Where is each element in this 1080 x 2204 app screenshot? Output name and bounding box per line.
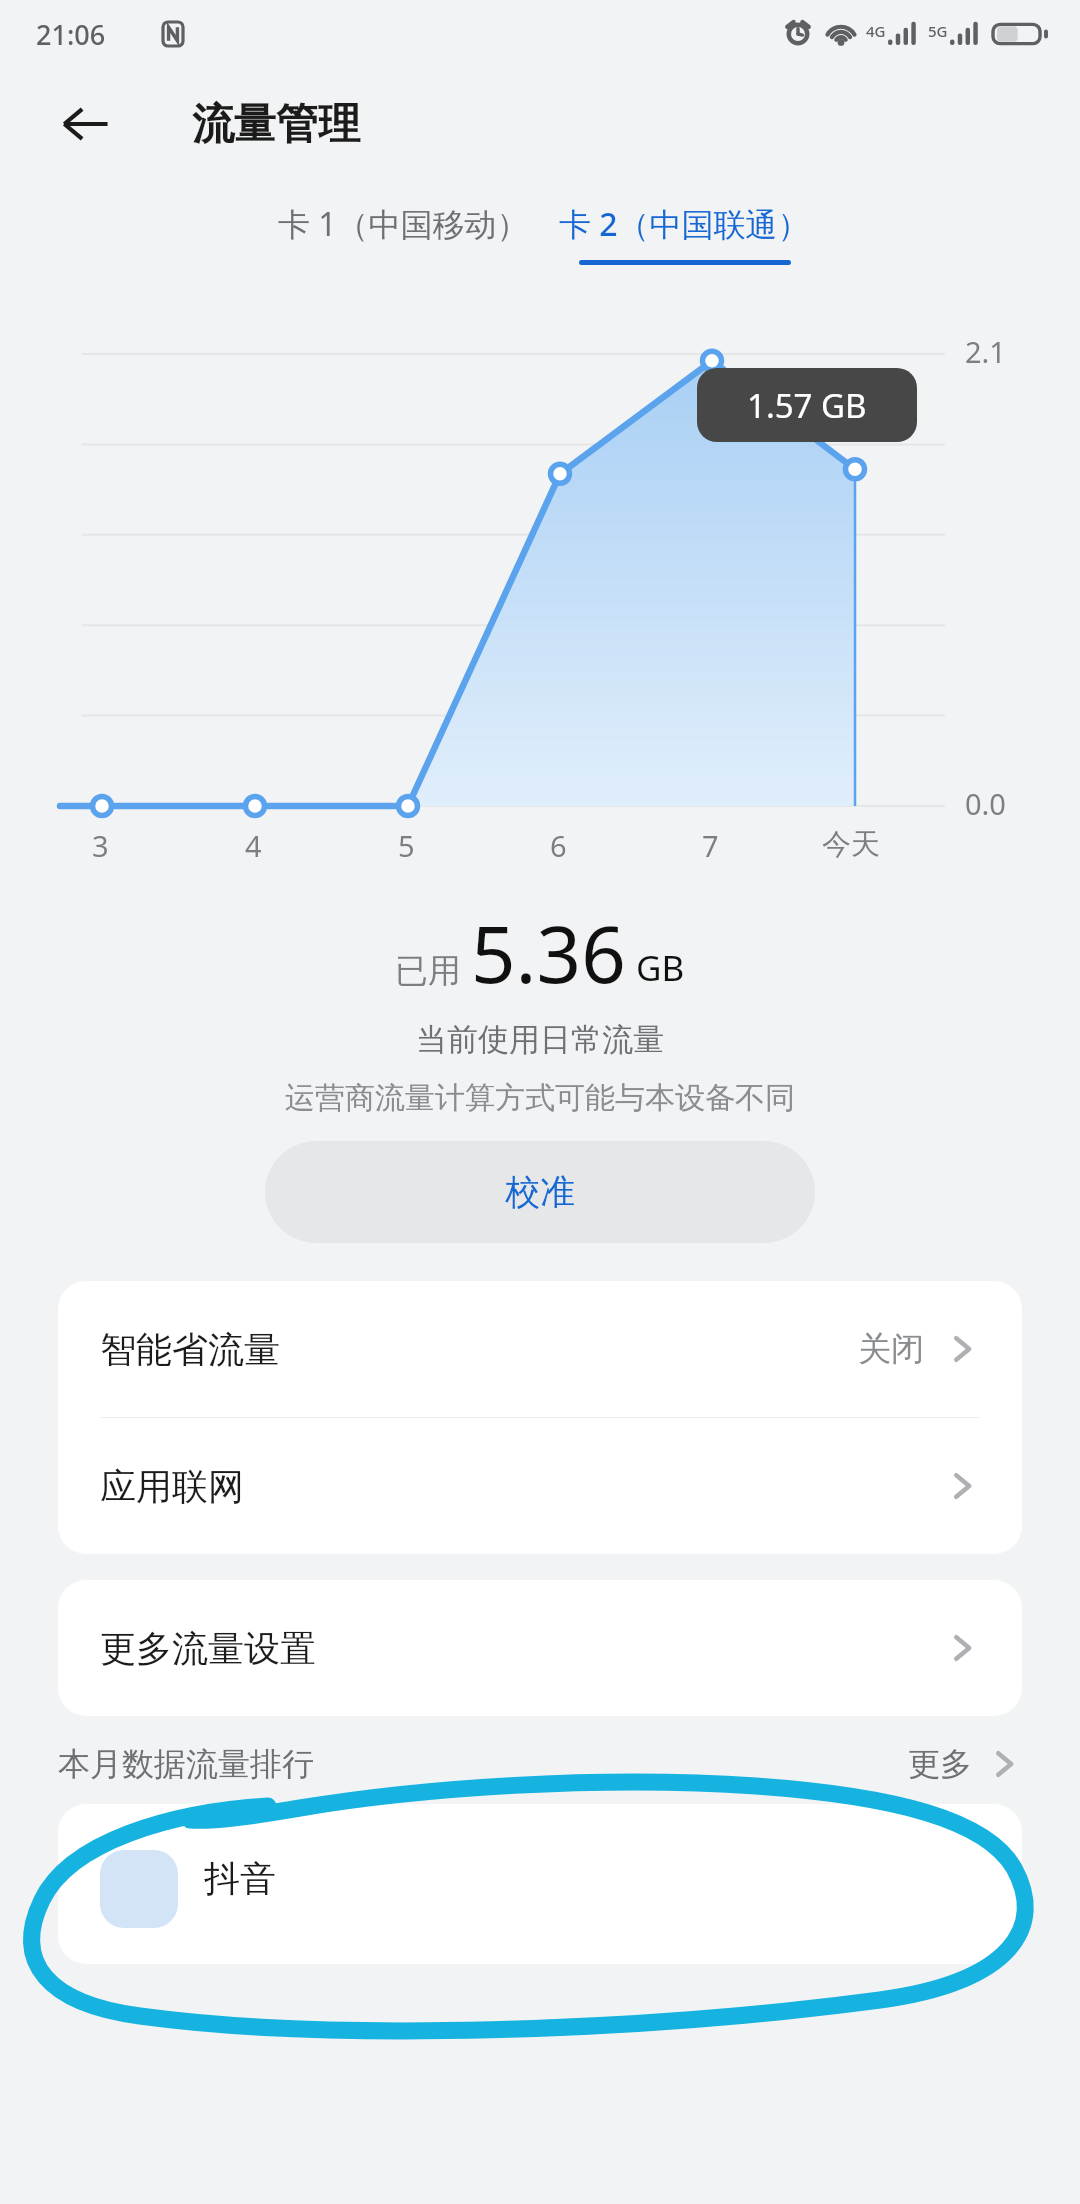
staticText: 流量管理 (192, 98, 360, 151)
button[interactable]: 卡 1（中国移动） (262, 192, 545, 256)
staticText: 7 (702, 826, 719, 865)
staticText: 4G (866, 21, 886, 41)
staticText: 6 (550, 826, 567, 865)
button[interactable]: 应用联网 (58, 1418, 1022, 1554)
staticText: 关闭 (858, 1328, 924, 1370)
button[interactable]: 校准 (265, 1141, 815, 1243)
staticText: 今天 (822, 826, 880, 863)
staticText: 抖音 (204, 1856, 276, 1901)
staticText: 5.36 (471, 900, 626, 1006)
staticText: 已用 (395, 950, 461, 992)
staticText: 更多流量设置 (100, 1626, 316, 1671)
staticText: 智能省流量 (100, 1327, 280, 1372)
button[interactable]: 本月数据流量排行 (58, 1744, 1022, 1784)
staticText: 4 (245, 826, 262, 865)
staticText: 校准 (505, 1170, 575, 1214)
staticText: 本月数据流量排行 (58, 1744, 314, 1784)
staticText: 当前使用日常流量 (416, 1020, 664, 1059)
staticText: 5 (398, 826, 415, 865)
staticText: 3 (92, 826, 109, 865)
button[interactable]: 智能省流量 (58, 1281, 1022, 1417)
staticText: 应用联网 (100, 1464, 244, 1509)
button[interactable]: 更多流量设置 (58, 1580, 1022, 1716)
staticText: 0.0 (965, 784, 1006, 823)
button[interactable]: 抖音 (58, 1804, 1022, 1964)
staticText: 21:06 (36, 16, 106, 53)
button[interactable]: Back (52, 91, 118, 157)
staticText: 卡 1（中国移动） (278, 202, 529, 246)
staticText: 更多 (908, 1744, 972, 1784)
staticText: 1.57 GB (747, 383, 867, 428)
staticText: 5G (928, 21, 948, 41)
button[interactable]: 卡 2（中国联通） (551, 192, 818, 275)
staticText: GB (636, 944, 685, 992)
staticText: 卡 2（中国联通） (559, 202, 810, 246)
staticText: 运营商流量计算方式可能与本设备不同 (285, 1079, 795, 1117)
staticText: 2.1 (965, 332, 1006, 371)
